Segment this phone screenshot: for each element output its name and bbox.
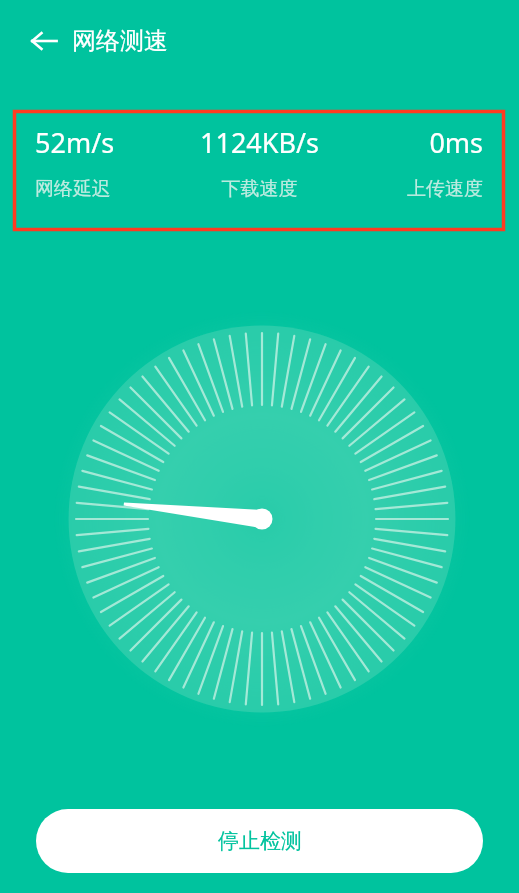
staticText: 网络测速 <box>72 26 168 56</box>
staticText: 0ms <box>334 124 483 161</box>
staticText: 网络延迟 <box>35 177 185 201</box>
staticText: 上传速度 <box>334 177 483 201</box>
staticText: 停止检测 <box>218 828 302 854</box>
button[interactable]: Back <box>22 19 66 63</box>
staticText: 1124KB/s <box>185 124 334 161</box>
staticText: 下载速度 <box>185 177 334 201</box>
button[interactable]: 停止检测 <box>36 809 483 873</box>
staticText: 52m/s <box>35 124 185 161</box>
